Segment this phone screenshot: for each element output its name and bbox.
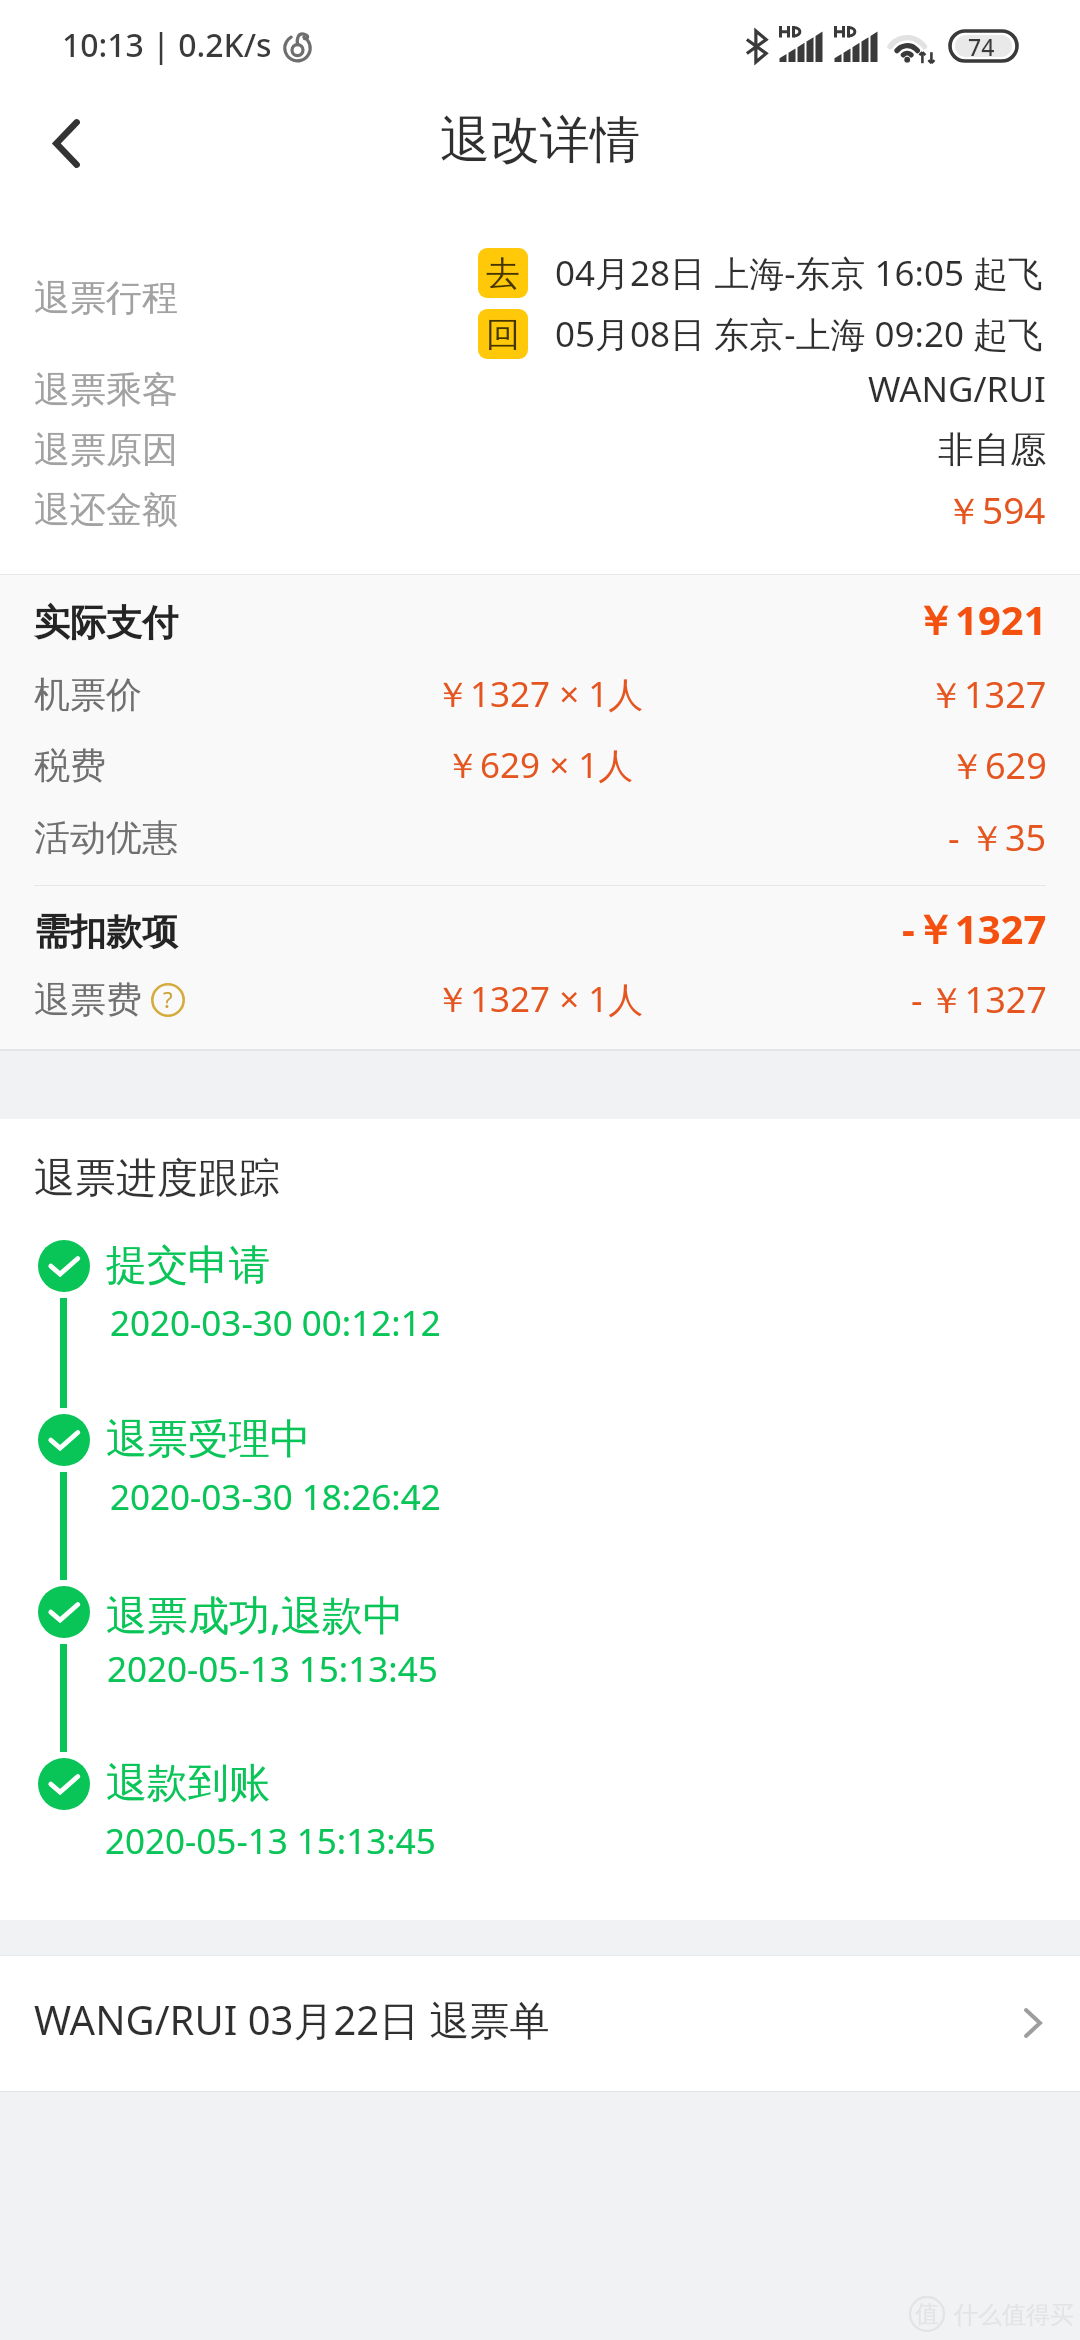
staticText: 实际支付	[34, 600, 178, 645]
staticText: ￥629	[949, 741, 1047, 790]
staticText: 退款到账	[106, 1758, 270, 1810]
staticText: 2020-05-13 15:13:45	[107, 1645, 438, 1693]
staticText: 什么值得买	[954, 2300, 1074, 2330]
staticText: ?	[163, 984, 173, 1014]
button[interactable]: Help	[151, 983, 185, 1017]
staticText: 值	[915, 2299, 939, 2329]
staticText: WANG/RUI	[868, 365, 1046, 413]
staticText: 回	[486, 313, 520, 356]
staticText: 退改详情	[440, 109, 640, 172]
staticText: 05月08日 东京-上海 09:20 起飞	[555, 310, 1044, 358]
staticText: 10:13 | 0.2K/s	[62, 23, 272, 67]
staticText: 退票乘客	[34, 367, 178, 412]
staticText: WANG/RUI 03月22日 退票单	[34, 1992, 550, 2047]
staticText: 74	[968, 31, 995, 61]
staticText: ￥629 × 1人	[445, 741, 634, 789]
button[interactable]: Back	[14, 91, 118, 195]
staticText: ￥1327 × 1人	[435, 975, 644, 1023]
staticText: 去	[486, 252, 520, 295]
staticText: 退票行程	[34, 275, 178, 320]
staticText: - ￥35	[948, 813, 1047, 862]
staticText: 2020-03-30 18:26:42	[110, 1473, 441, 1521]
staticText: 需扣款项	[34, 909, 178, 954]
staticText: ￥1327 × 1人	[435, 670, 644, 718]
staticText: 税费	[34, 743, 106, 788]
staticText: 退票进度跟踪	[34, 1153, 280, 1205]
staticText: ￥594	[945, 484, 1046, 535]
staticText: 2020-05-13 15:13:45	[105, 1817, 436, 1865]
staticText: 退票成功,退款中	[106, 1586, 404, 1642]
button[interactable]: WANG/RUI 03月22日 退票单	[0, 1956, 1080, 2091]
staticText: 非自愿	[938, 427, 1046, 472]
staticText: ￥1327	[928, 670, 1047, 719]
staticText: 活动优惠	[34, 815, 178, 860]
staticText: 退票受理中	[106, 1414, 311, 1466]
staticText: 退票原因	[34, 427, 178, 472]
staticText: 提交申请	[106, 1240, 270, 1292]
staticText: ￥1921	[915, 592, 1047, 647]
staticText: 04月28日 上海-东京 16:05 起飞	[555, 249, 1044, 297]
staticText: 退还金额	[34, 487, 178, 532]
staticText: -￥1327	[902, 901, 1047, 956]
staticText: 2020-03-30 00:12:12	[110, 1299, 441, 1347]
staticText: 退票费	[34, 977, 142, 1022]
staticText: - ￥1327	[911, 975, 1047, 1024]
staticText: 机票价	[34, 672, 142, 717]
